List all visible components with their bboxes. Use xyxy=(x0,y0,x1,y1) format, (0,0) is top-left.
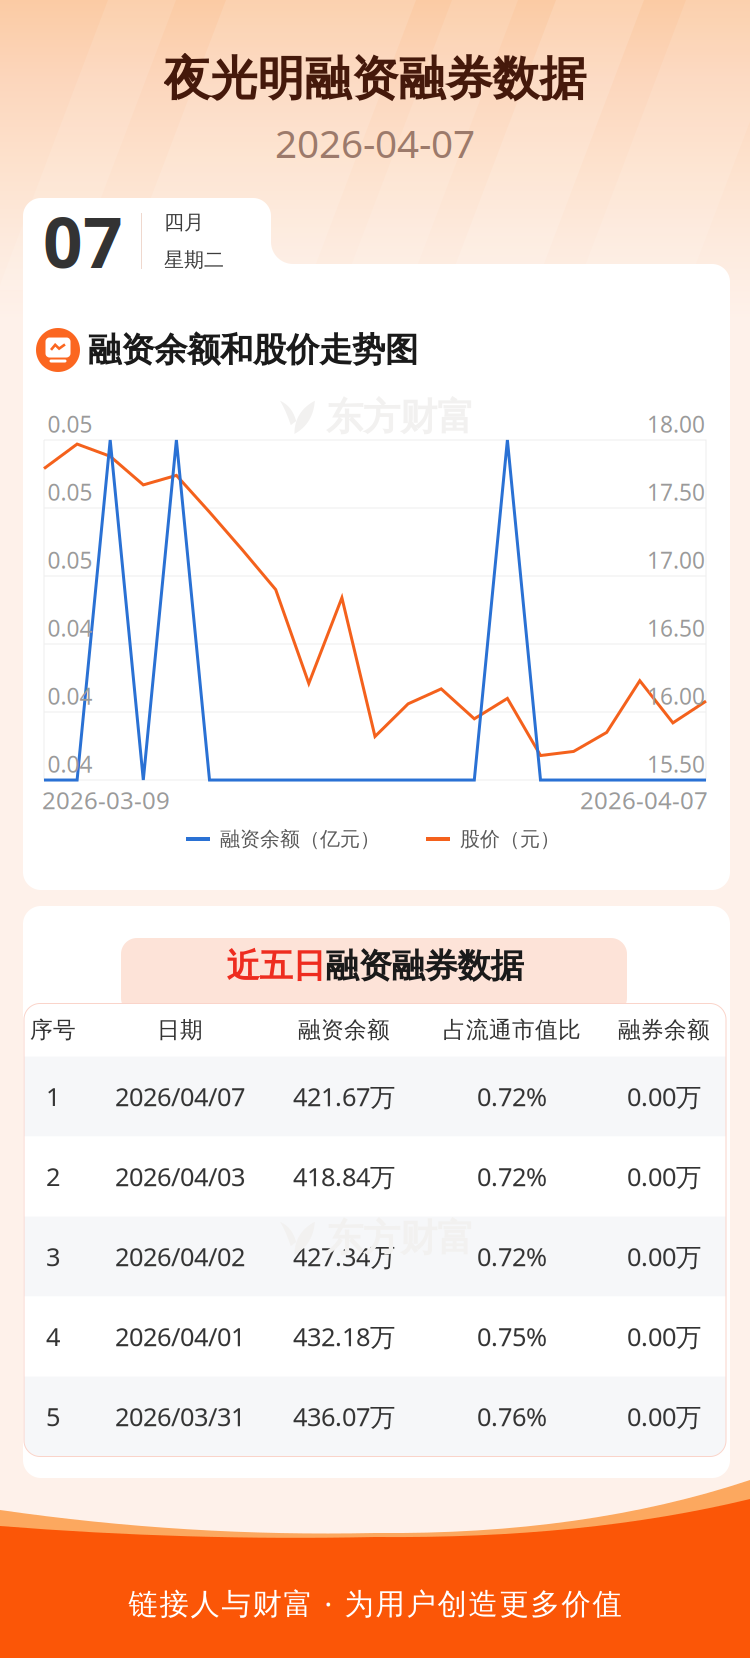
staticText: 0.00万 xyxy=(627,1160,701,1193)
staticText: 0.04 xyxy=(47,613,92,643)
staticText: 15.50 xyxy=(647,749,705,779)
staticText: 16.00 xyxy=(647,681,705,711)
staticText: 436.07万 xyxy=(293,1400,395,1433)
staticText: 17.50 xyxy=(647,477,705,507)
staticText: 序号 xyxy=(30,1016,76,1044)
staticText: 股价（元） xyxy=(460,827,560,851)
staticText: 链接人与财富 · 为用户创造更多价值 xyxy=(128,1583,621,1622)
staticText: 4 xyxy=(46,1320,60,1353)
staticText: 07 xyxy=(43,195,123,287)
staticText: 427.34万 xyxy=(293,1240,395,1273)
staticText: 0.76% xyxy=(477,1400,547,1433)
staticText: 5 xyxy=(46,1400,60,1433)
staticText: 17.00 xyxy=(647,545,705,575)
staticText: 2026/04/02 xyxy=(115,1240,245,1273)
staticText: 星期二 xyxy=(164,247,224,272)
staticText: 占流通市值比 xyxy=(443,1016,581,1044)
staticText: 3 xyxy=(46,1240,60,1273)
staticText: 融资融券数据 xyxy=(325,945,523,986)
staticText: 融资余额 xyxy=(298,1016,390,1044)
staticText: 2026/04/03 xyxy=(115,1160,245,1193)
staticText: 融资余额和股价走势图 xyxy=(88,329,418,370)
staticText: 16.50 xyxy=(647,613,705,643)
staticText: 0.05 xyxy=(47,545,92,575)
staticText: 432.18万 xyxy=(293,1320,395,1353)
staticText: 0.72% xyxy=(477,1080,547,1113)
staticText: 0.00万 xyxy=(627,1240,701,1273)
staticText: 0.04 xyxy=(47,681,92,711)
staticText: 日期 xyxy=(157,1016,203,1044)
staticText: 东方财富 xyxy=(326,1215,474,1261)
staticText: 0.72% xyxy=(477,1160,547,1193)
staticText: 18.00 xyxy=(647,409,705,439)
staticText: 2026-04-07 xyxy=(580,784,708,816)
staticText: 0.00万 xyxy=(627,1320,701,1353)
staticText: 2026/03/31 xyxy=(115,1400,245,1433)
staticText: 融券余额 xyxy=(618,1016,710,1044)
staticText: 四月 xyxy=(164,210,204,234)
staticText: 融资余额（亿元） xyxy=(220,827,380,851)
staticText: 近五日 xyxy=(226,945,325,986)
staticText: 0.75% xyxy=(477,1320,547,1353)
staticText: 2026-04-07 xyxy=(275,117,475,169)
staticText: 0.00万 xyxy=(627,1400,701,1433)
staticText: 夜光明融资融券数据 xyxy=(163,50,586,108)
staticText: 418.84万 xyxy=(293,1160,395,1193)
staticText: 2 xyxy=(46,1160,60,1193)
staticText: 东方财富 xyxy=(326,394,474,440)
staticText: 0.00万 xyxy=(627,1080,701,1113)
staticText: 2026/04/01 xyxy=(115,1320,245,1353)
staticText: 1 xyxy=(46,1080,60,1113)
staticText: 2026-03-09 xyxy=(42,784,170,816)
staticText: 2026/04/07 xyxy=(115,1080,245,1113)
staticText: 0.04 xyxy=(47,749,92,779)
staticText: 0.72% xyxy=(477,1240,547,1273)
staticText: 0.05 xyxy=(47,409,92,439)
staticText: 421.67万 xyxy=(293,1080,395,1113)
staticText: 0.05 xyxy=(47,477,92,507)
